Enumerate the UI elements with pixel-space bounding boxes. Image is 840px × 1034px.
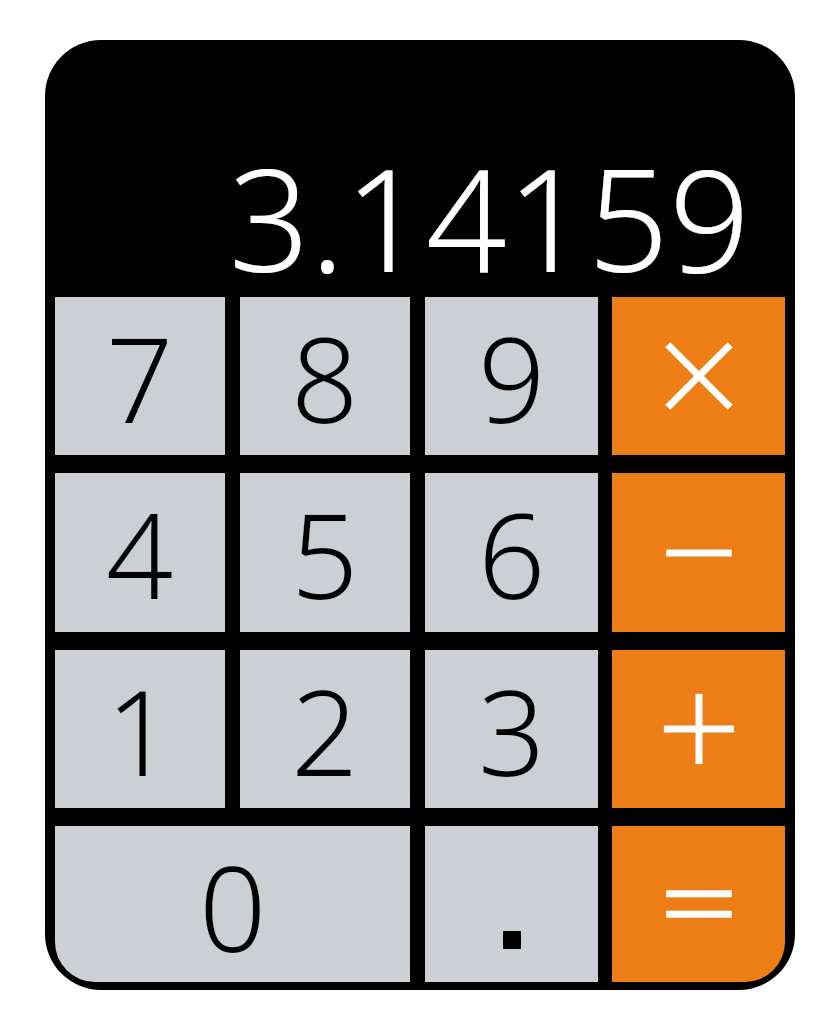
button[interactable]: Plus bbox=[612, 650, 785, 808]
button[interactable]: 0 bbox=[55, 826, 410, 982]
button[interactable]: 8 bbox=[240, 297, 410, 455]
button[interactable]: 7 bbox=[55, 297, 225, 455]
button[interactable]: 3 bbox=[425, 650, 598, 808]
staticText: 6 bbox=[478, 473, 546, 632]
staticText: 9 bbox=[478, 297, 546, 455]
button[interactable]: 2 bbox=[240, 650, 410, 808]
button[interactable]: Multiply bbox=[612, 297, 785, 455]
staticText: 3 bbox=[478, 650, 546, 808]
staticText: 3.14159 bbox=[228, 120, 750, 278]
button[interactable]: 4 bbox=[55, 473, 225, 632]
staticText: 8 bbox=[291, 297, 359, 455]
button[interactable]: 5 bbox=[240, 473, 410, 632]
staticText: 1 bbox=[106, 650, 174, 808]
button[interactable]: 9 bbox=[425, 297, 598, 455]
staticText: 2 bbox=[291, 650, 359, 808]
button[interactable]: 6 bbox=[425, 473, 598, 632]
staticText: 0 bbox=[199, 826, 267, 982]
staticText: 4 bbox=[106, 473, 174, 632]
staticText: 7 bbox=[106, 297, 174, 455]
button[interactable] bbox=[425, 826, 598, 982]
button[interactable]: 3.14159 bbox=[110, 120, 750, 278]
button[interactable]: Minus bbox=[612, 473, 785, 632]
button[interactable]: 1 bbox=[55, 650, 225, 808]
staticText: 5 bbox=[291, 473, 359, 632]
button[interactable]: Equals bbox=[612, 826, 785, 982]
